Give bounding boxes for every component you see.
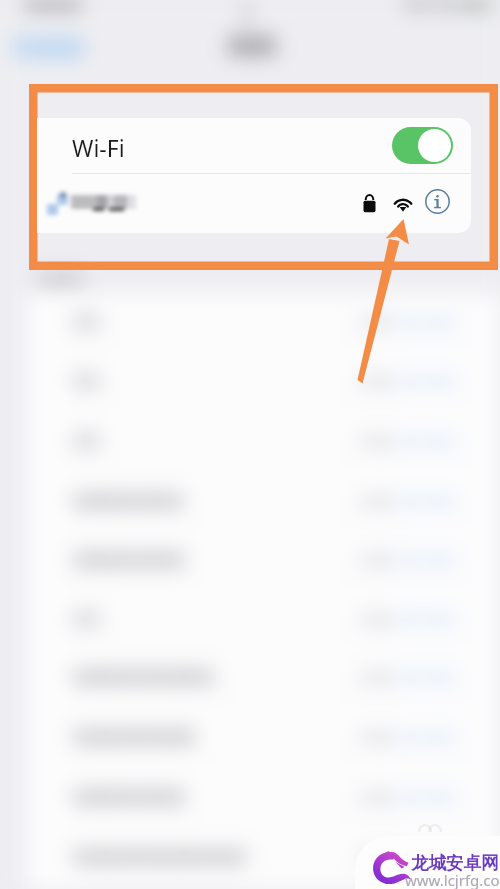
button[interactable]: Secured network — [37, 174, 471, 233]
button[interactable]: Wi-Fi signal strength — [392, 192, 414, 212]
button[interactable]: Network information — [425, 189, 450, 214]
staticText: 龙城安卓网 — [411, 852, 499, 874]
button[interactable]: Secured network — [362, 194, 377, 213]
button[interactable]: Wi-Fi — [37, 118, 471, 173]
staticText: www.lcjrfg.com — [405, 870, 500, 889]
staticText: Wi-Fi — [72, 132, 125, 163]
button[interactable]: Wi-Fi toggle — [392, 127, 453, 164]
